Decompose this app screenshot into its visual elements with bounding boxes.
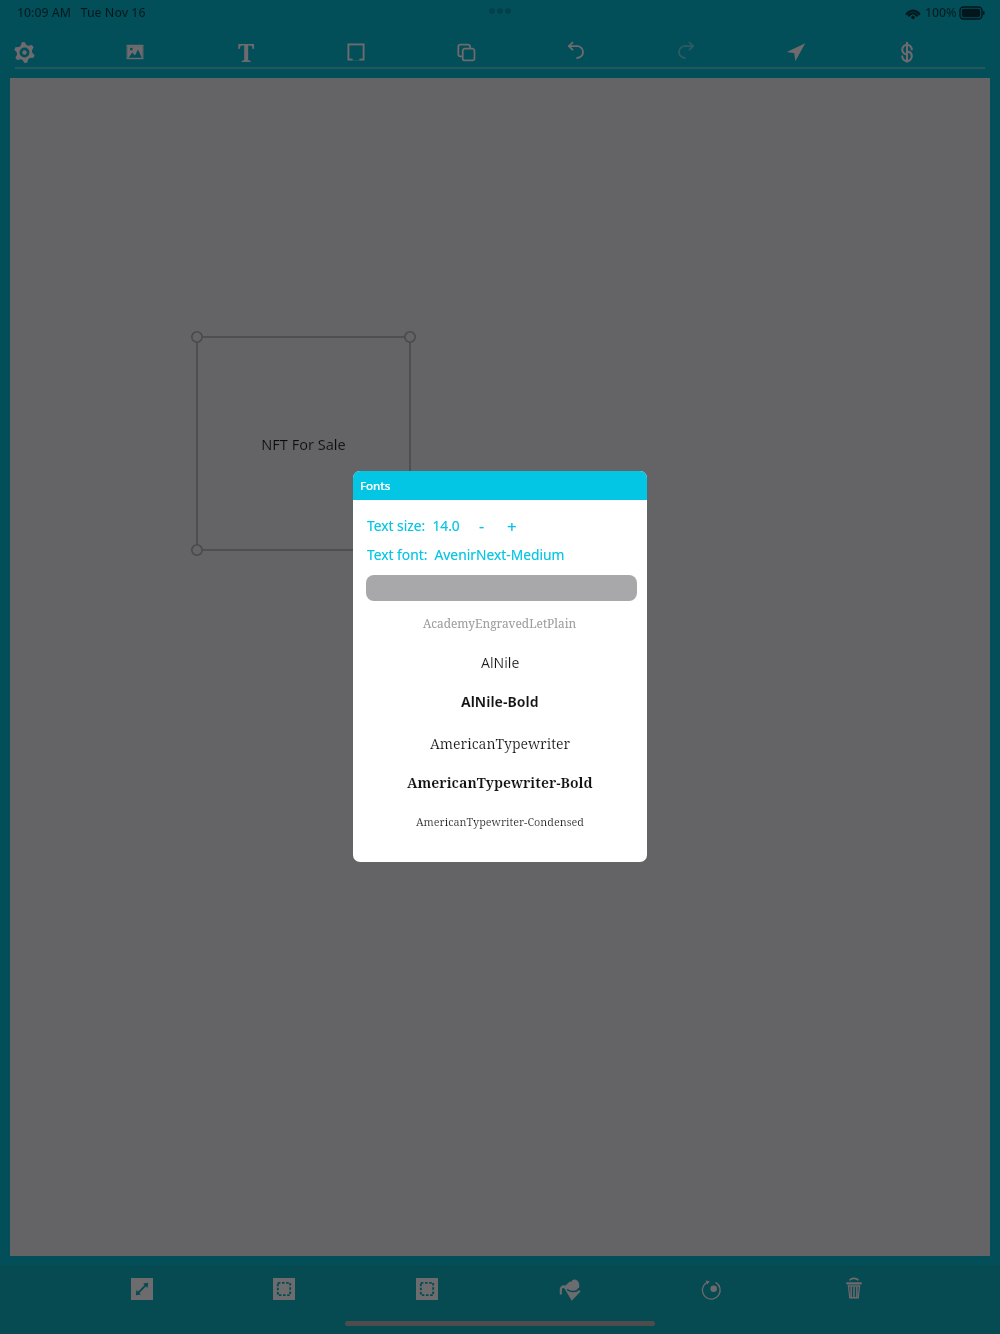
button[interactable]: AmericanTypewriter xyxy=(353,727,647,759)
button[interactable]: Select all xyxy=(405,1267,449,1311)
button[interactable]: Selected font xyxy=(366,575,637,601)
button[interactable]: Text xyxy=(224,30,268,74)
staticText: NFT For Sale xyxy=(261,434,346,454)
button[interactable]: AlNile-Bold xyxy=(353,685,647,717)
staticText: AmericanTypewriter xyxy=(430,734,571,753)
staticText: AmericanTypewriter-Bold xyxy=(407,773,593,792)
button[interactable]: Rotate xyxy=(690,1267,734,1311)
staticText: 10:09 AM Tue Nov 16 xyxy=(17,4,146,21)
button[interactable]: AcademyEngravedLetPlain xyxy=(353,607,647,639)
button[interactable]: Duplicate xyxy=(444,30,488,74)
button[interactable]: Resize xyxy=(120,1267,164,1311)
button[interactable]: Price xyxy=(885,30,929,74)
staticText: T xyxy=(238,35,255,69)
button[interactable]: Settings xyxy=(2,30,46,74)
button[interactable]: Delete xyxy=(832,1267,876,1311)
staticText: AlNile xyxy=(481,653,520,672)
button[interactable]: Decrease text size xyxy=(472,515,492,535)
button[interactable]: Text font: AvenirNext-Medium xyxy=(367,545,565,564)
button[interactable]: Fonts xyxy=(353,471,647,500)
staticText: AcademyEngravedLetPlain xyxy=(423,615,577,631)
staticText: Text size: 14.0 xyxy=(367,516,460,535)
staticText: + xyxy=(507,515,517,535)
staticText: - xyxy=(479,515,485,535)
button[interactable]: Send xyxy=(774,30,818,74)
button[interactable]: Redo xyxy=(664,30,708,74)
staticText: AlNile-Bold xyxy=(461,692,539,711)
button[interactable]: AmericanTypewriter-Bold xyxy=(353,766,647,798)
button[interactable]: Image xyxy=(113,30,157,74)
staticText: AmericanTypewriter-Condensed xyxy=(416,814,584,829)
button[interactable]: Favorite xyxy=(548,1267,592,1311)
button[interactable]: Increase text size xyxy=(502,515,522,535)
button[interactable]: Shape xyxy=(334,30,378,74)
staticText: Fonts xyxy=(360,478,391,494)
button[interactable]: Undo xyxy=(554,30,598,74)
button[interactable]: NFT For Sale xyxy=(197,337,410,550)
button[interactable]: AmericanTypewriter-Condensed xyxy=(353,805,647,837)
staticText: 100% xyxy=(925,4,957,21)
button[interactable]: Select xyxy=(262,1267,306,1311)
button[interactable]: AlNile xyxy=(353,646,647,678)
